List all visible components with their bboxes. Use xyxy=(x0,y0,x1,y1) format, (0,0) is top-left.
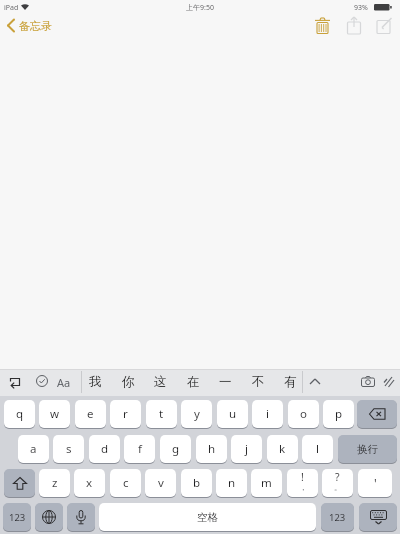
staticText: Aa xyxy=(57,375,71,390)
staticText: 一 xyxy=(219,374,232,390)
button[interactable]: r xyxy=(110,400,141,429)
button[interactable] xyxy=(346,16,362,35)
button[interactable]: g xyxy=(160,435,191,464)
staticText: 上午9:50 xyxy=(170,3,230,13)
button[interactable] xyxy=(361,376,375,387)
staticText: i xyxy=(266,406,269,422)
button[interactable]: 你 xyxy=(116,370,140,394)
button[interactable]: t xyxy=(146,400,177,429)
staticText: 换行 xyxy=(357,443,378,456)
staticText: k xyxy=(279,441,286,457)
button[interactable] xyxy=(36,375,48,387)
button[interactable]: ? xyxy=(322,469,353,498)
staticText: iPad xyxy=(4,3,19,13)
button[interactable]: 不 xyxy=(246,370,270,394)
button[interactable]: s xyxy=(53,435,84,464)
staticText: p xyxy=(335,406,343,422)
staticText: e xyxy=(87,406,94,422)
button[interactable]: d xyxy=(89,435,120,464)
button[interactable]: o xyxy=(288,400,319,429)
staticText: ? xyxy=(335,470,340,484)
staticText: 123 xyxy=(9,511,26,524)
button[interactable]: 空格 xyxy=(99,503,316,532)
button[interactable]: c xyxy=(110,469,141,498)
staticText: 在 xyxy=(187,374,200,390)
button[interactable]: h xyxy=(196,435,227,464)
button[interactable] xyxy=(35,503,63,532)
button[interactable]: 这 xyxy=(148,370,172,394)
staticText: ， xyxy=(299,482,307,492)
staticText: m xyxy=(261,475,272,491)
staticText: s xyxy=(66,441,72,457)
staticText: b xyxy=(193,475,201,491)
staticText: a xyxy=(30,441,37,457)
staticText: h xyxy=(208,441,216,457)
button[interactable]: q xyxy=(4,400,35,429)
button[interactable]: e xyxy=(75,400,106,429)
staticText: y xyxy=(194,406,200,422)
staticText: u xyxy=(229,406,237,422)
button[interactable]: 我 xyxy=(83,370,107,394)
staticText: f xyxy=(138,441,142,457)
button[interactable]: ! xyxy=(287,469,318,498)
button[interactable]: b xyxy=(181,469,212,498)
button[interactable]: v xyxy=(145,469,176,498)
staticText: r xyxy=(123,406,128,422)
staticText: o xyxy=(300,406,307,422)
staticText: 不 xyxy=(252,374,265,390)
button[interactable]: j xyxy=(231,435,262,464)
button[interactable]: p xyxy=(323,400,354,429)
button[interactable]: ' xyxy=(358,469,392,498)
button[interactable]: 换行 xyxy=(338,435,397,464)
staticText: 有 xyxy=(284,374,297,390)
button[interactable]: 123 xyxy=(3,503,31,532)
staticText: t xyxy=(159,406,164,422)
button[interactable] xyxy=(314,17,331,34)
staticText: v xyxy=(158,475,164,491)
button[interactable]: l xyxy=(302,435,333,464)
button[interactable] xyxy=(376,17,394,34)
button[interactable]: k xyxy=(267,435,298,464)
button[interactable]: i xyxy=(252,400,283,429)
button[interactable]: f xyxy=(124,435,155,464)
button[interactable] xyxy=(309,378,321,385)
staticText: w xyxy=(50,406,60,422)
staticText: j xyxy=(245,441,248,457)
staticText: 123 xyxy=(329,511,346,524)
button[interactable] xyxy=(383,375,396,388)
staticText: g xyxy=(172,441,180,457)
staticText: 空格 xyxy=(197,511,218,524)
button[interactable] xyxy=(67,503,95,532)
staticText: 。 xyxy=(334,482,342,492)
button[interactable]: y xyxy=(181,400,212,429)
staticText: 这 xyxy=(154,374,167,390)
staticText: c xyxy=(123,475,129,491)
staticText: l xyxy=(316,441,319,457)
staticText: q xyxy=(16,406,24,422)
button[interactable]: 123 xyxy=(321,503,354,532)
button[interactable]: a xyxy=(18,435,49,464)
staticText: ' xyxy=(374,475,377,491)
staticText: x xyxy=(86,475,93,491)
staticText: 你 xyxy=(122,374,135,390)
staticText: 备忘录 xyxy=(19,19,52,33)
button[interactable] xyxy=(359,503,397,532)
staticText: d xyxy=(101,441,109,457)
button[interactable]: 有 xyxy=(278,370,302,394)
button[interactable] xyxy=(357,400,397,429)
button[interactable]: x xyxy=(74,469,105,498)
staticText: ! xyxy=(301,470,304,484)
staticText: z xyxy=(52,475,58,491)
staticText: n xyxy=(228,475,236,491)
staticText: 我 xyxy=(89,374,102,390)
button[interactable] xyxy=(7,19,15,32)
button[interactable] xyxy=(4,469,35,498)
button[interactable]: 在 xyxy=(181,370,205,394)
button[interactable]: m xyxy=(251,469,282,498)
button[interactable]: w xyxy=(39,400,70,429)
button[interactable]: z xyxy=(39,469,70,498)
button[interactable] xyxy=(7,375,21,389)
button[interactable]: 一 xyxy=(213,370,237,394)
button[interactable]: n xyxy=(216,469,247,498)
button[interactable]: u xyxy=(217,400,248,429)
